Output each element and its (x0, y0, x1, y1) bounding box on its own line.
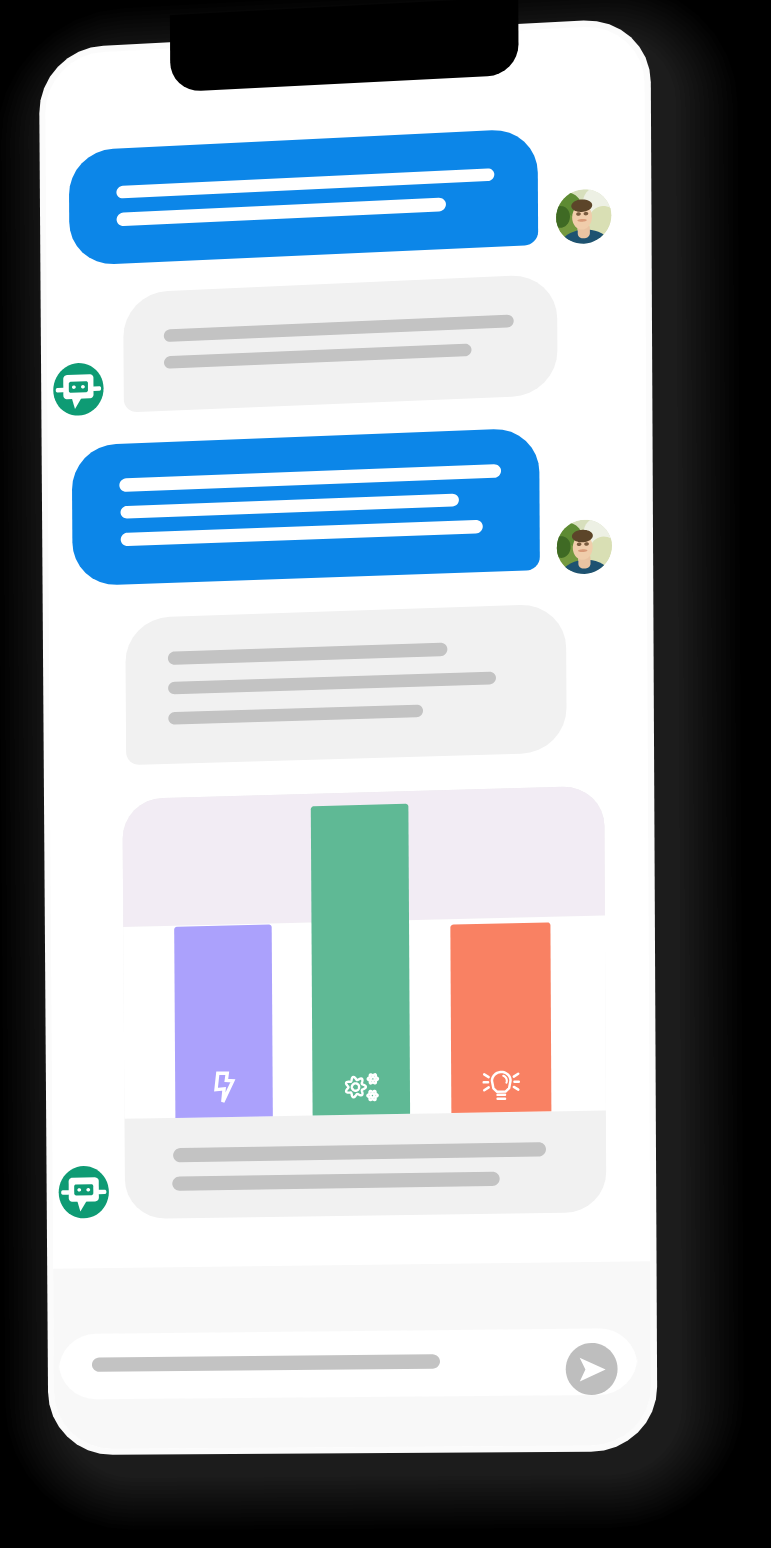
button[interactable]: Chatbot conversation (0, 0, 771, 1548)
